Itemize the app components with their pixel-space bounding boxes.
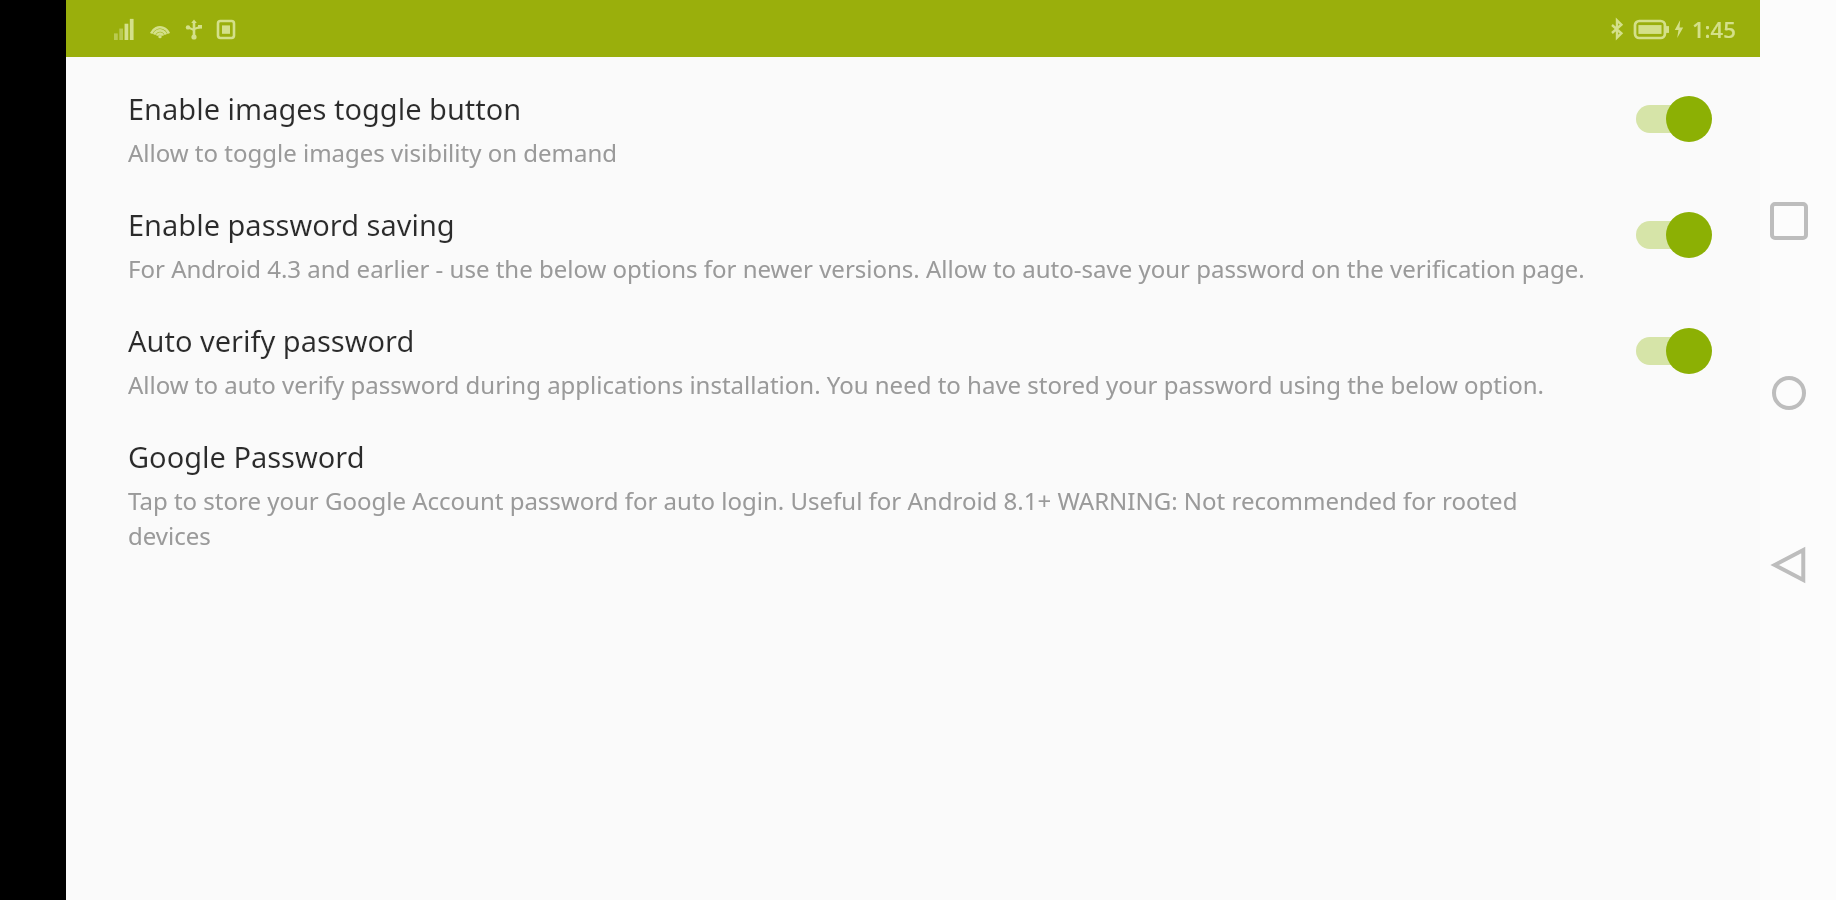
button[interactable]: Back [1760, 536, 1818, 594]
button[interactable]: Auto verify password [66, 303, 1760, 419]
button[interactable]: Toggle Enable password saving [1628, 205, 1728, 265]
staticText: Enable images toggle button [128, 89, 522, 128]
button[interactable]: Enable password saving [66, 187, 1760, 303]
button[interactable]: Recent apps [1760, 192, 1818, 250]
button[interactable]: Google Password [66, 419, 1760, 570]
staticText: Allow to toggle images visibility on dem… [128, 136, 618, 169]
staticText: Enable password saving [128, 205, 455, 244]
button[interactable]: Toggle Enable images toggle button [1628, 89, 1728, 149]
staticText: Tap to store your Google Account passwor… [128, 484, 1604, 552]
button[interactable]: Enable images toggle button [66, 71, 1760, 187]
staticText: Google Password [128, 437, 365, 476]
staticText: Auto verify password [128, 321, 415, 360]
staticText: For Android 4.3 and earlier - use the be… [128, 252, 1585, 285]
button[interactable]: Toggle Auto verify password [1628, 321, 1728, 381]
staticText: 1:45 [1692, 14, 1736, 44]
staticText: Allow to auto verify password during app… [128, 368, 1544, 401]
button[interactable]: Home [1760, 364, 1818, 422]
